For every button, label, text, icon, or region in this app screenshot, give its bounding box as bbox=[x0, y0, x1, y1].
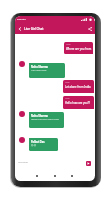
staticText: Message bbox=[18, 160, 28, 163]
staticText: Live Girl Chat bbox=[24, 27, 44, 31]
button[interactable]: Back bbox=[16, 24, 24, 34]
button[interactable]: Share bbox=[85, 24, 94, 34]
button[interactable]: Neha Sharma bbox=[29, 63, 65, 78]
staticText: Where are you from bbox=[66, 47, 92, 51]
staticText: Let alone from India bbox=[65, 85, 91, 89]
button[interactable]: Send bbox=[86, 161, 91, 166]
staticText: I am here baby bbox=[31, 69, 47, 72]
staticText: Pallavi Das bbox=[31, 140, 45, 143]
button[interactable]: Pallavi Das bbox=[29, 138, 58, 151]
button[interactable]: Now bbox=[64, 42, 93, 54]
staticText: ☺ ☺ bbox=[31, 144, 37, 147]
staticText: Now bbox=[65, 81, 70, 84]
staticText: Neha Sharma bbox=[31, 114, 48, 117]
staticText: Now bbox=[65, 97, 70, 100]
staticText: heyy!!! chill bass baby good bbox=[31, 118, 59, 121]
staticText: 4:20 PM bbox=[17, 18, 26, 21]
button[interactable]: Now bbox=[63, 96, 94, 109]
staticText: Now bbox=[66, 43, 71, 46]
staticText: Neha Sharma bbox=[31, 65, 48, 68]
staticText: Hello how are you?? bbox=[65, 101, 91, 105]
button[interactable]: Now bbox=[63, 80, 94, 93]
button[interactable]: Neha Sharma bbox=[29, 112, 64, 128]
